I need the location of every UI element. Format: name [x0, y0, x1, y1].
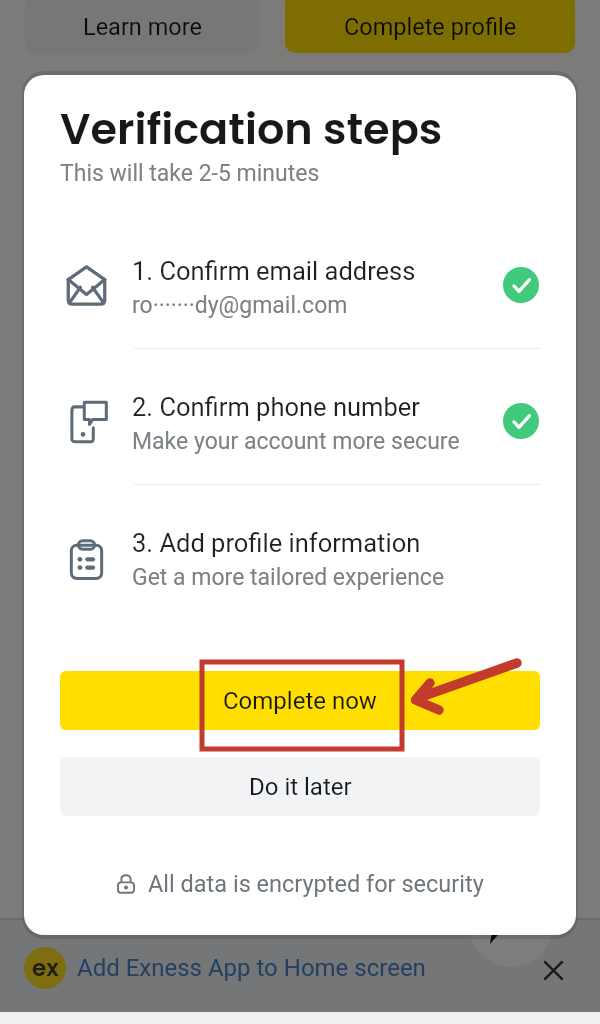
button[interactable]: Dismiss banner: [525, 942, 582, 999]
button[interactable]: Complete profile: [285, 0, 575, 53]
staticText: 1. Confirm email address: [132, 256, 416, 286]
staticText: This will take 2-5 minutes: [60, 160, 320, 187]
staticText: Complete now: [223, 687, 377, 715]
staticText: 2. Confirm phone number: [132, 392, 420, 422]
button[interactable]: Learn more: [25, 0, 260, 53]
button[interactable]: ex: [24, 936, 580, 1000]
staticText: Complete profile: [344, 13, 517, 41]
button[interactable]: 2. Confirm phone number: [24, 384, 576, 520]
staticText: ro·······dy@gmail.com: [132, 292, 348, 319]
staticText: Learn more: [83, 13, 202, 41]
button[interactable]: Do it later: [60, 757, 540, 816]
button[interactable]: Complete now: [60, 671, 540, 730]
staticText: ex: [32, 952, 59, 984]
staticText: Do it later: [249, 773, 352, 801]
button[interactable]: Chat with support: [469, 883, 553, 967]
button[interactable]: 1. Confirm email address: [24, 248, 576, 384]
button[interactable]: 3. Add profile information: [24, 520, 576, 656]
staticText: Make your account more secure: [132, 428, 460, 455]
staticText: 3. Add profile information: [132, 528, 421, 558]
staticText: Get a more tailored experience: [132, 564, 445, 591]
staticText: All data is encrypted for security: [148, 870, 484, 898]
staticText: Verification steps: [60, 99, 443, 159]
staticText: Add Exness App to Home screen: [77, 954, 426, 982]
